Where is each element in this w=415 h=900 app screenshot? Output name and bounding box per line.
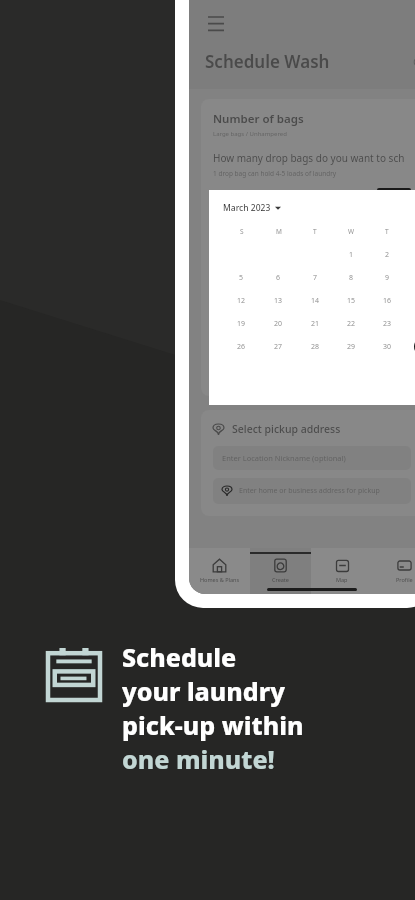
button[interactable]: 29: [342, 337, 361, 356]
staticText: pick-up within: [122, 708, 304, 742]
button[interactable]: Enter Location Nickname (optional): [213, 446, 411, 470]
button[interactable]: March 2023: [223, 202, 281, 214]
staticText: 1: [349, 250, 354, 260]
staticText: 21: [311, 319, 320, 329]
staticText: 20: [274, 319, 283, 329]
staticText: How many drop bags do you want to sch: [213, 151, 405, 165]
staticText: 8: [349, 273, 354, 283]
staticText: 14: [311, 296, 320, 306]
button[interactable]: 16: [378, 291, 397, 310]
staticText: 28: [311, 342, 320, 352]
button[interactable]: 28: [306, 337, 325, 356]
staticText: 30: [383, 342, 392, 352]
staticText: March 2023: [223, 202, 271, 214]
staticText: 19: [237, 319, 246, 329]
button[interactable]: Ca: [413, 54, 415, 69]
staticText: W: [348, 227, 355, 236]
staticText: your laundry: [122, 674, 285, 708]
staticText: Number of bags: [213, 111, 304, 127]
staticText: 9: [385, 273, 390, 283]
staticText: Create: [272, 576, 289, 583]
button[interactable]: 21: [306, 314, 325, 333]
staticText: M: [276, 227, 282, 236]
button[interactable]: [377, 188, 411, 197]
staticText: Profile: [396, 576, 413, 583]
staticText: Select your hamper: [213, 188, 273, 197]
button[interactable]: 6: [269, 268, 288, 287]
button[interactable]: 15: [342, 291, 361, 310]
button[interactable]: 1: [342, 245, 361, 264]
button[interactable]: Enter home or business address for picku…: [213, 478, 411, 504]
staticText: 26: [237, 342, 246, 352]
button[interactable]: 9: [378, 268, 397, 287]
button[interactable]: 7: [306, 268, 325, 287]
button[interactable]: Profile: [373, 548, 415, 594]
button[interactable]: 31: [414, 337, 415, 356]
staticText: 27: [274, 342, 283, 352]
staticText: Large bags / Unhampered: [213, 130, 287, 138]
button[interactable]: 27: [269, 337, 288, 356]
button[interactable]: 8: [342, 268, 361, 287]
staticText: Select pickup address: [232, 422, 341, 436]
staticText: 2: [385, 250, 390, 260]
staticText: Map: [336, 576, 348, 583]
button[interactable]: 19: [232, 314, 251, 333]
staticText: 29: [347, 342, 356, 352]
staticText: 15: [347, 296, 356, 306]
button[interactable]: 2: [378, 245, 397, 264]
button[interactable]: Homes & Plans: [189, 548, 250, 594]
staticText: T: [385, 227, 389, 236]
staticText: Enter Location Nickname (optional): [222, 453, 346, 463]
staticText: Schedule: [122, 640, 237, 674]
button[interactable]: 22: [342, 314, 361, 333]
staticText: Schedule Wash: [205, 50, 330, 73]
staticText: one minute!: [122, 742, 275, 776]
button[interactable]: Map: [311, 548, 373, 594]
staticText: 7: [313, 273, 318, 283]
button[interactable]: Create: [250, 548, 311, 594]
staticText: Ca: [413, 54, 415, 69]
staticText: 13: [274, 296, 283, 306]
button[interactable]: 14: [306, 291, 325, 310]
button[interactable]: 5: [232, 268, 251, 287]
button[interactable]: 23: [378, 314, 397, 333]
staticText: Homes & Plans: [200, 576, 240, 583]
button[interactable]: 13: [269, 291, 288, 310]
button[interactable]: 30: [378, 337, 397, 356]
staticText: 22: [347, 319, 356, 329]
staticText: Enter home or business address for picku…: [239, 486, 380, 496]
staticText: S: [240, 227, 244, 236]
staticText: T: [313, 227, 317, 236]
button[interactable]: 20: [269, 314, 288, 333]
button[interactable]: 26: [232, 337, 251, 356]
button[interactable]: 12: [232, 291, 251, 310]
staticText: 23: [383, 319, 392, 329]
button[interactable]: Menu: [203, 10, 229, 36]
staticText: 6: [276, 273, 281, 283]
staticText: 1 drop bag can hold 4-5 loads of laundry: [213, 169, 337, 178]
staticText: 5: [239, 273, 244, 283]
staticText: 12: [237, 296, 246, 306]
staticText: 16: [383, 296, 392, 306]
